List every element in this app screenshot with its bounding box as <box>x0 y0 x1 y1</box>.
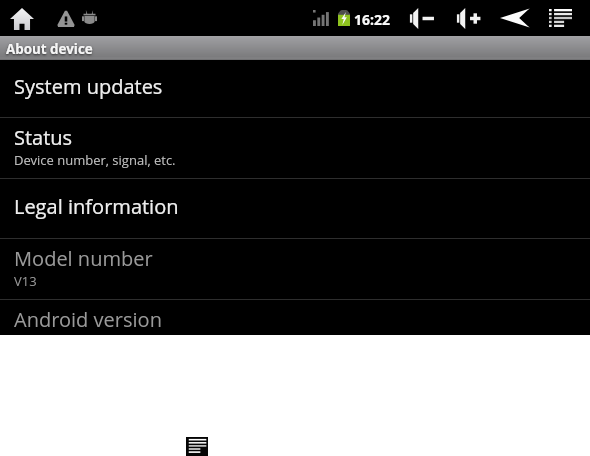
button[interactable]: Back <box>500 8 530 28</box>
staticText: Android version <box>14 306 162 333</box>
staticText: Model number <box>14 245 153 272</box>
button[interactable]: Recent apps <box>549 9 572 27</box>
button[interactable]: System updates <box>0 60 590 117</box>
button[interactable]: Volume down <box>409 8 435 29</box>
button[interactable]: Model number <box>0 239 590 299</box>
button[interactable]: Home <box>10 8 34 30</box>
button[interactable]: Status <box>0 118 590 178</box>
staticText: 16:22 <box>354 10 390 29</box>
button[interactable]: Android version <box>0 300 590 335</box>
button[interactable]: Menu <box>186 437 208 456</box>
staticText: System updates <box>14 73 163 100</box>
staticText: Legal information <box>14 193 179 220</box>
staticText: Device number, signal, etc. <box>14 151 176 169</box>
button[interactable]: Legal information <box>0 179 590 238</box>
staticText: Status <box>14 124 73 151</box>
staticText: V13 <box>14 272 37 290</box>
staticText: About device <box>6 40 93 58</box>
button[interactable]: Volume up <box>456 8 482 29</box>
